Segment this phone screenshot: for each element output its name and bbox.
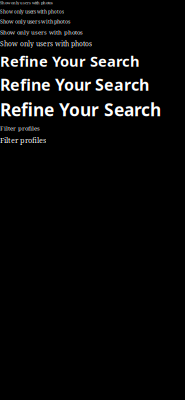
staticText: Show only users with photos — [0, 28, 83, 36]
staticText: Show only users with photos — [0, 8, 64, 15]
staticText: Filter profiles — [0, 124, 40, 132]
staticText: Filter profiles — [0, 135, 46, 145]
staticText: Show only users with photos — [0, 0, 53, 5]
staticText: Refine Your Search — [0, 74, 149, 95]
staticText: Show only users with photos — [0, 39, 92, 48]
staticText: Show only users with photos — [0, 18, 70, 25]
staticText: Refine Your Search — [0, 98, 161, 121]
staticText: Refine Your Search — [0, 51, 140, 71]
